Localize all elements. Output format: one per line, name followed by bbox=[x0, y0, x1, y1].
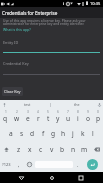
button[interactable]: m bbox=[79, 141, 90, 157]
staticText: w bbox=[14, 114, 20, 123]
staticText: 9 bbox=[87, 110, 89, 114]
staticText: 4 bbox=[37, 110, 39, 114]
button[interactable]: Shift bbox=[0, 141, 13, 157]
button[interactable]: 2 bbox=[11, 109, 22, 125]
button[interactable]: Enter bbox=[87, 159, 98, 170]
button[interactable]: 7 bbox=[63, 109, 73, 125]
staticText: Clear Key bbox=[4, 89, 21, 94]
staticText: u bbox=[66, 114, 71, 123]
staticText: o bbox=[86, 114, 90, 123]
button[interactable]: k bbox=[78, 125, 88, 141]
staticText: a bbox=[9, 129, 13, 138]
button[interactable]: Clear Key bbox=[2, 87, 23, 96]
button[interactable]: test bbox=[17, 100, 37, 109]
staticText: v bbox=[50, 145, 54, 154]
staticText: e bbox=[26, 114, 30, 123]
staticText: 5 bbox=[47, 110, 49, 114]
staticText: Entity ID bbox=[3, 40, 19, 45]
staticText: 6 bbox=[57, 110, 59, 114]
staticText: i bbox=[77, 114, 79, 123]
button[interactable]: the bbox=[67, 100, 87, 109]
staticText: p bbox=[96, 114, 101, 123]
button[interactable]: Emoji bbox=[24, 157, 35, 172]
staticText: n bbox=[71, 145, 76, 154]
staticText: What is this app? bbox=[3, 27, 31, 32]
button[interactable]: 6 bbox=[53, 109, 63, 125]
staticText: Credential Key bbox=[3, 61, 29, 66]
button[interactable]: z bbox=[13, 141, 24, 157]
staticText: 8 bbox=[77, 110, 79, 114]
staticText: , bbox=[18, 161, 20, 168]
staticText: g bbox=[51, 129, 56, 138]
staticText: r bbox=[37, 114, 40, 123]
button[interactable]: d bbox=[27, 125, 38, 141]
staticText: j bbox=[72, 129, 74, 138]
button[interactable]: Backspace bbox=[90, 141, 103, 157]
staticText: ?123 bbox=[2, 162, 11, 167]
button[interactable]: . bbox=[73, 157, 82, 172]
button[interactable]: v bbox=[46, 141, 57, 157]
button[interactable]: g bbox=[48, 125, 58, 141]
button[interactable]: 4 bbox=[33, 109, 43, 125]
staticText: Credentials for Enterprise bbox=[2, 10, 58, 16]
staticText: 1 bbox=[5, 110, 7, 114]
button[interactable]: j bbox=[68, 125, 78, 141]
button[interactable]: Keyboard settings bbox=[0, 100, 8, 109]
staticText: b bbox=[60, 145, 65, 154]
button[interactable]: x bbox=[24, 141, 35, 157]
button[interactable]: 5 bbox=[43, 109, 53, 125]
staticText: the bbox=[74, 102, 80, 107]
button[interactable]: Microphone bbox=[95, 100, 103, 109]
button[interactable]: ?123 bbox=[0, 157, 13, 172]
staticText: f bbox=[42, 129, 45, 138]
button[interactable]: 1 bbox=[0, 109, 11, 125]
button[interactable]: c bbox=[35, 141, 46, 157]
button[interactable]: Home bbox=[43, 172, 60, 183]
button[interactable]: 3 bbox=[22, 109, 33, 125]
staticText: 2 bbox=[16, 110, 18, 114]
staticText: y bbox=[56, 114, 60, 123]
staticText: x bbox=[28, 145, 32, 154]
staticText: 7 bbox=[67, 110, 69, 114]
button[interactable]: a bbox=[5, 125, 16, 141]
staticText: z bbox=[17, 145, 21, 154]
button[interactable]: Recents bbox=[72, 172, 89, 183]
staticText: h bbox=[61, 129, 66, 138]
staticText: test bbox=[24, 102, 31, 107]
staticText: . bbox=[77, 161, 79, 168]
button[interactable]: Back bbox=[13, 172, 30, 183]
staticText: l bbox=[92, 129, 94, 138]
staticText: m bbox=[81, 145, 88, 154]
staticText: c bbox=[39, 145, 43, 154]
staticText: Use of this app requires a license key. … bbox=[3, 18, 86, 26]
button[interactable]: 0 bbox=[93, 109, 103, 125]
staticText: t bbox=[47, 114, 50, 123]
staticText: s bbox=[20, 129, 24, 138]
button[interactable]: 8 bbox=[73, 109, 83, 125]
button[interactable]: b bbox=[57, 141, 68, 157]
staticText: 10:35 bbox=[90, 1, 101, 6]
button[interactable]: f bbox=[38, 125, 48, 141]
button[interactable]: What is this app? bbox=[3, 27, 31, 32]
button[interactable]: l bbox=[88, 125, 98, 141]
button[interactable]: s bbox=[16, 125, 27, 141]
staticText: k bbox=[81, 129, 85, 138]
button[interactable]: n bbox=[68, 141, 79, 157]
staticText: q bbox=[3, 114, 8, 123]
button[interactable]: h bbox=[58, 125, 68, 141]
staticText: d bbox=[30, 129, 35, 138]
button[interactable]: 9 bbox=[83, 109, 93, 125]
staticText: 0 bbox=[97, 110, 99, 114]
staticText: 3 bbox=[27, 110, 29, 114]
button[interactable]: , bbox=[13, 157, 24, 172]
